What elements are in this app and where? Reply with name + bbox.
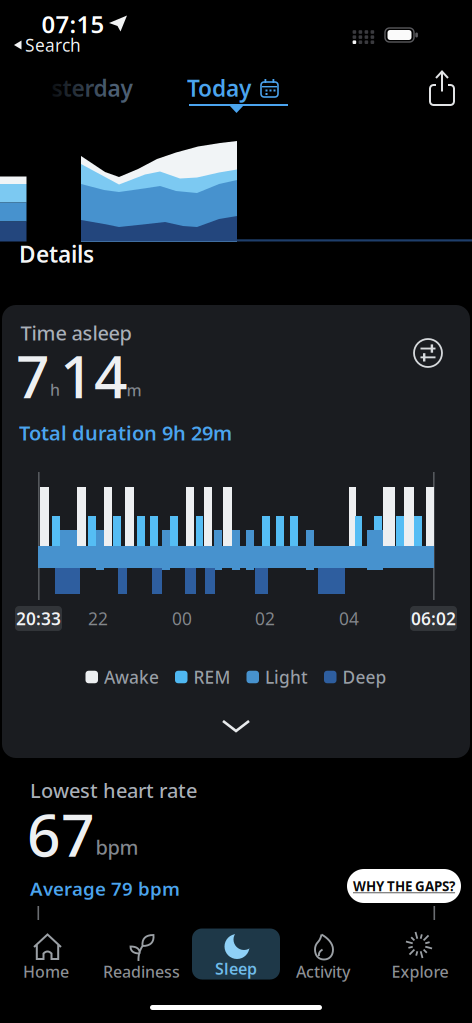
staticText: sterday xyxy=(51,73,132,103)
staticText: Deep xyxy=(342,665,386,688)
button[interactable]: Readiness xyxy=(96,922,186,986)
staticText: 00 xyxy=(172,607,192,630)
button[interactable] xyxy=(218,718,254,734)
button[interactable]: Activity xyxy=(278,922,368,986)
button[interactable] xyxy=(427,69,457,107)
staticText: Average 79 bpm xyxy=(30,876,180,901)
button[interactable]: WHY THE GAPS? xyxy=(347,869,461,903)
staticText: REM xyxy=(193,665,230,688)
staticText: Time asleep xyxy=(20,319,131,346)
staticText: Light xyxy=(265,665,308,688)
staticText: 14 xyxy=(60,336,128,414)
staticText: m xyxy=(126,379,141,401)
staticText: bpm xyxy=(95,834,138,860)
staticText: Sleep xyxy=(215,958,257,979)
staticText: Lowest heart rate xyxy=(30,777,197,804)
staticText: 07:15 xyxy=(41,8,104,40)
button[interactable]: Sleep xyxy=(190,922,282,986)
staticText: 67 xyxy=(27,795,95,873)
button[interactable]: sterday xyxy=(47,71,137,105)
staticText: Home xyxy=(23,961,69,982)
staticText: Today xyxy=(187,73,251,103)
staticText: 7 xyxy=(16,336,50,414)
staticText: 06:02 xyxy=(411,607,456,630)
staticText: Details xyxy=(19,239,94,269)
staticText: Awake xyxy=(104,665,159,688)
staticText: Activity xyxy=(296,961,350,982)
button[interactable]: Explore xyxy=(376,922,466,986)
staticText: 04 xyxy=(339,607,359,630)
button[interactable]: Search xyxy=(0,36,80,54)
staticText: Explore xyxy=(391,961,448,982)
staticText: Total duration 9h 29m xyxy=(19,419,232,446)
staticText: WHY THE GAPS? xyxy=(353,877,455,895)
button[interactable]: Home xyxy=(2,922,92,986)
staticText: Search xyxy=(25,33,81,56)
staticText: 02 xyxy=(255,607,275,630)
button[interactable]: Today xyxy=(187,71,279,105)
staticText: 22 xyxy=(88,607,108,630)
button[interactable] xyxy=(412,337,444,369)
staticText: 20:33 xyxy=(16,607,61,630)
staticText: Readiness xyxy=(103,961,180,982)
staticText: h xyxy=(50,379,60,400)
